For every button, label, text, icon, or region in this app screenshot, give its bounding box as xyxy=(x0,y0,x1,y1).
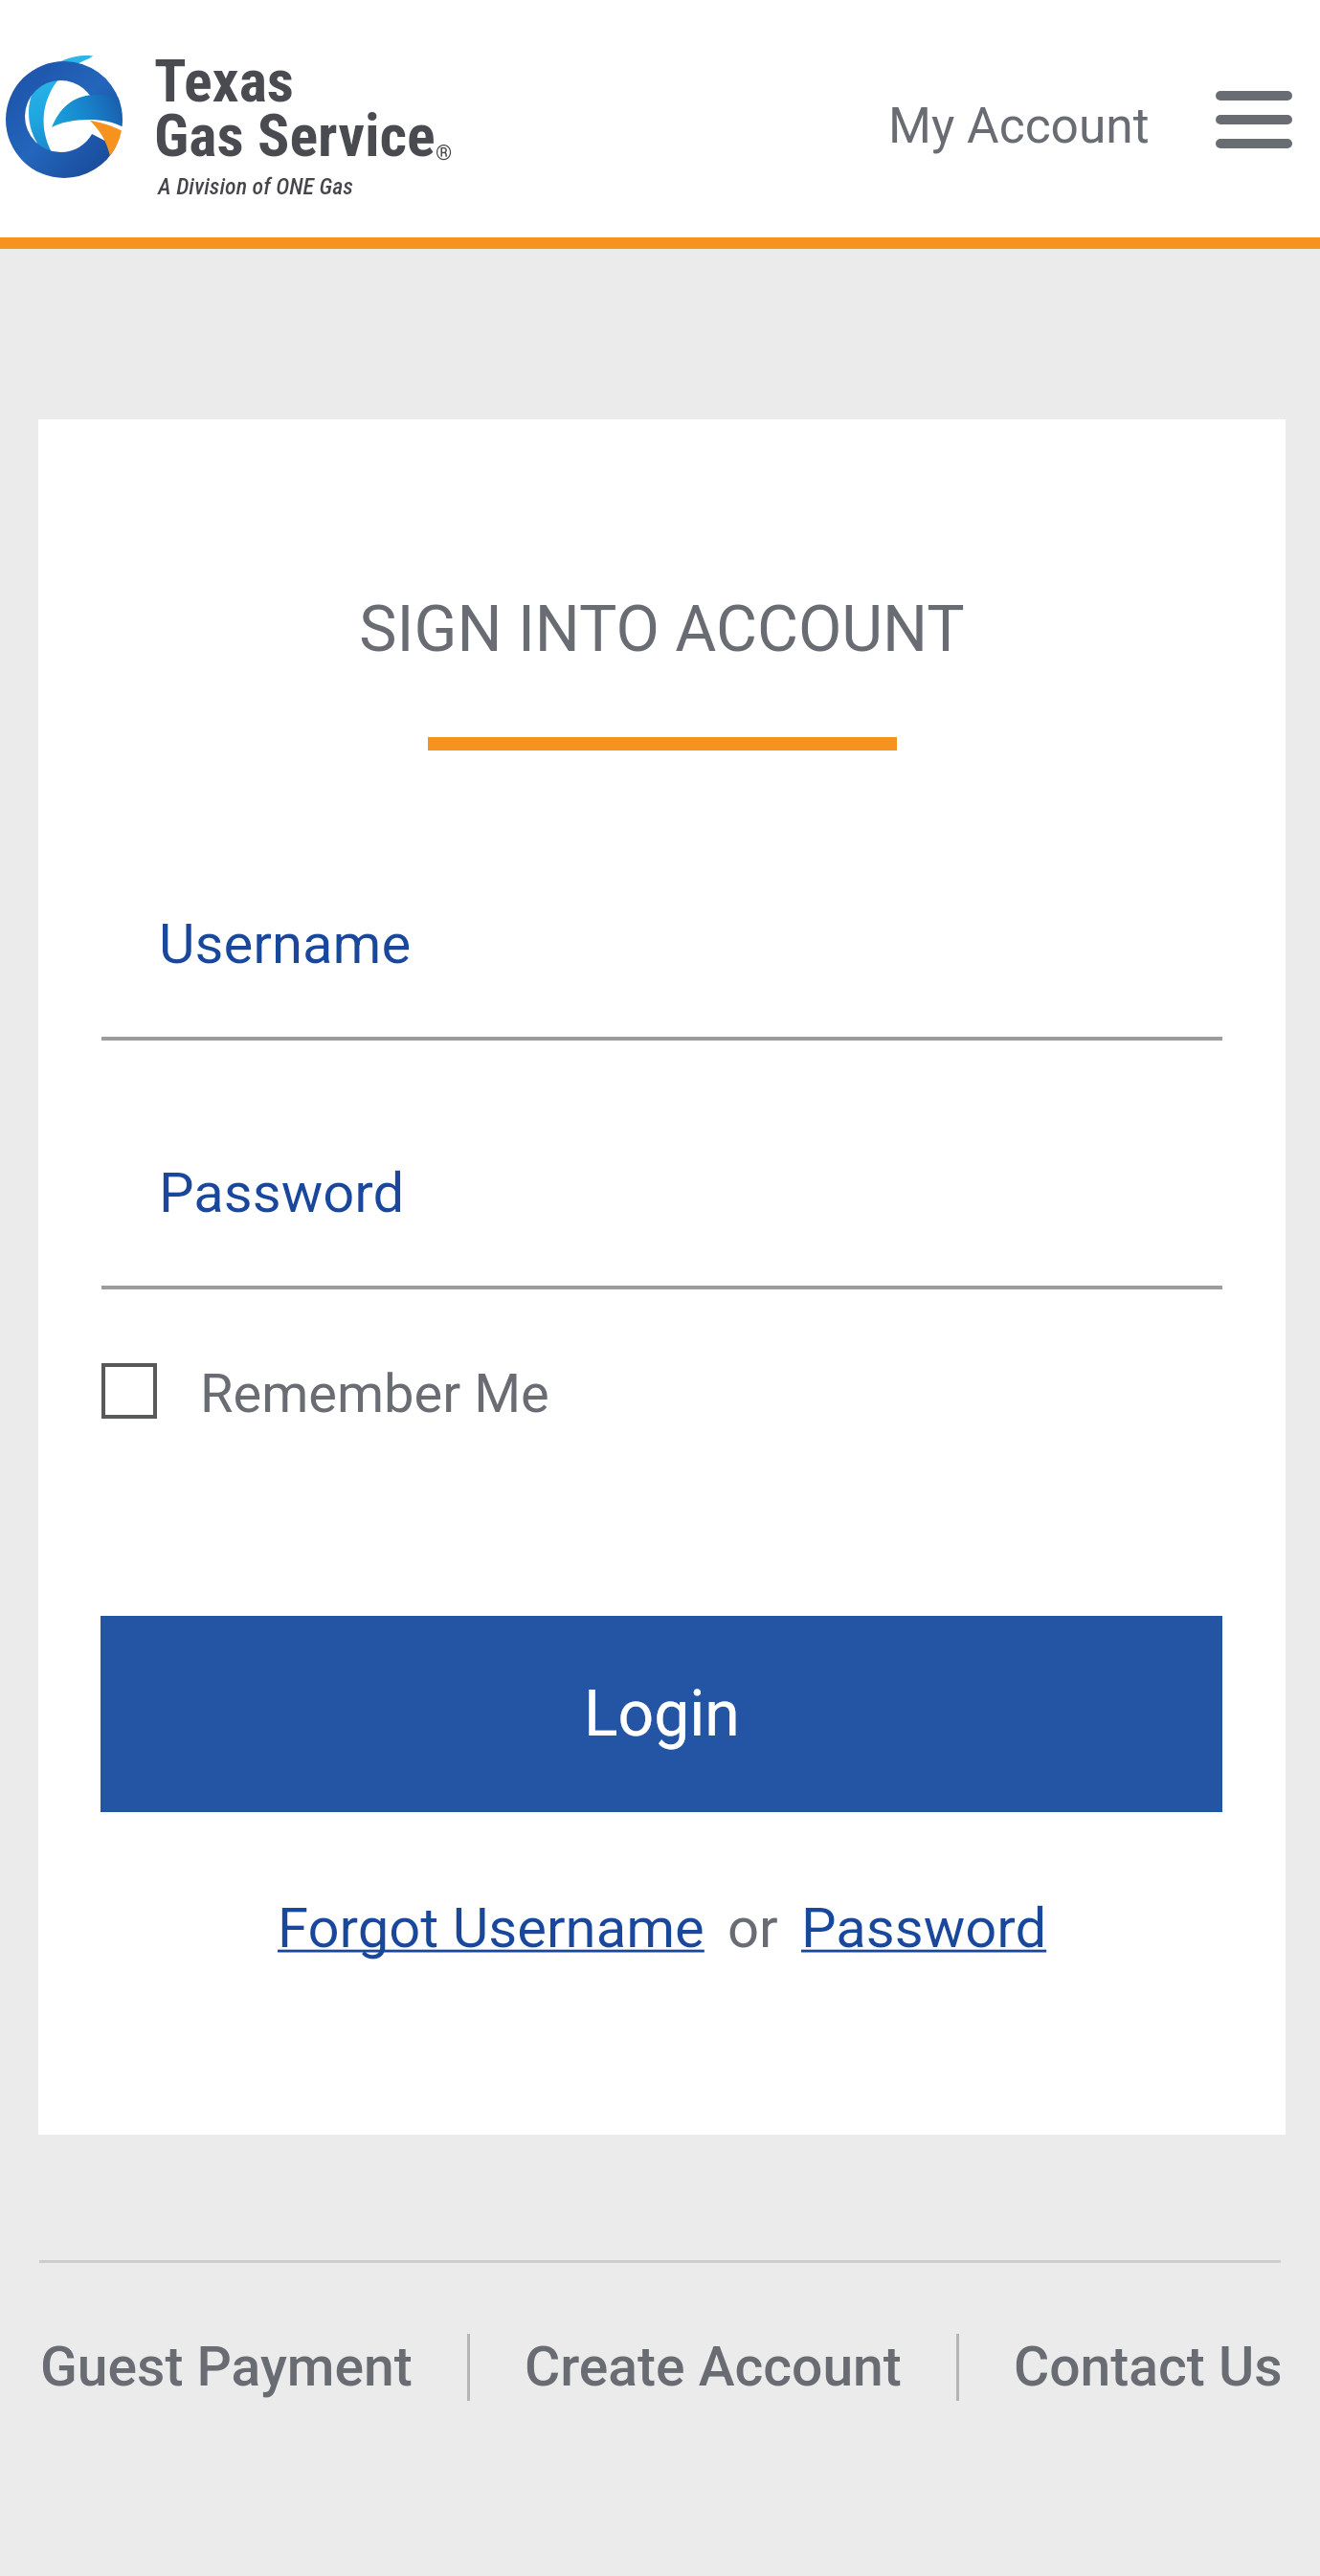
button[interactable]: Guest Payment xyxy=(40,2325,413,2408)
staticText: ® xyxy=(436,141,453,166)
staticText: A Division of ONE Gas xyxy=(158,173,353,200)
button[interactable]: Create Account xyxy=(525,2325,902,2408)
staticText: Guest Payment xyxy=(40,2335,413,2399)
staticText: Contact Us xyxy=(1014,2335,1283,2399)
staticText: Gas Service xyxy=(154,101,436,170)
staticText: My Account xyxy=(888,97,1150,154)
staticText: Username xyxy=(159,911,412,976)
button[interactable]: Password xyxy=(801,1895,1047,1960)
staticText: Password xyxy=(159,1160,405,1225)
button[interactable]: Contact Us xyxy=(1014,2325,1283,2408)
staticText: Login xyxy=(584,1677,740,1751)
button[interactable]: Texas Gas Service home xyxy=(4,38,454,201)
staticText: Remember Me xyxy=(200,1362,549,1425)
button[interactable]: Menu xyxy=(1201,67,1307,172)
button[interactable]: Remember Me xyxy=(96,1354,565,1428)
staticText: SIGN INTO ACCOUNT xyxy=(38,593,1286,666)
staticText: or xyxy=(727,1895,778,1960)
button[interactable]: My Account xyxy=(883,87,1155,164)
button[interactable]: Forgot Username xyxy=(278,1895,705,1960)
staticText: Password xyxy=(801,1895,1047,1960)
staticText: Create Account xyxy=(525,2335,902,2399)
staticText: Texas xyxy=(154,46,294,116)
button[interactable]: Login xyxy=(101,1616,1222,1812)
staticText: Forgot Username xyxy=(278,1895,705,1960)
